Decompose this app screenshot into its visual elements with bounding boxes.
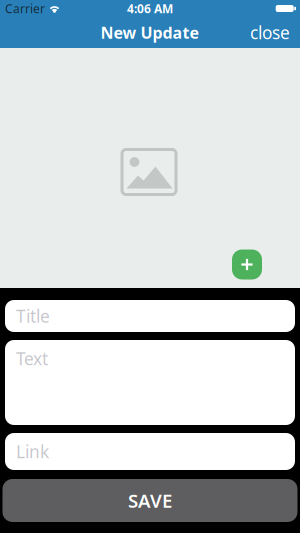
staticText: Link: [5, 440, 38, 463]
button[interactable]: close: [250, 22, 300, 45]
staticText: 4:06 AM: [127, 0, 173, 16]
staticText: New Update: [100, 22, 199, 43]
staticText: Title: [16, 304, 50, 327]
staticText: Link: [16, 440, 49, 463]
button[interactable]: Add photo: [232, 249, 262, 279]
staticText: Text: [16, 347, 48, 370]
staticText: Title: [5, 304, 39, 327]
staticText: Carrier: [5, 0, 45, 16]
button[interactable]: SAVE: [2, 479, 297, 522]
staticText: SAVE: [128, 488, 172, 513]
textField[interactable]: Title: [5, 304, 295, 327]
textField[interactable]: Link: [5, 440, 295, 463]
staticText: close: [250, 21, 290, 44]
